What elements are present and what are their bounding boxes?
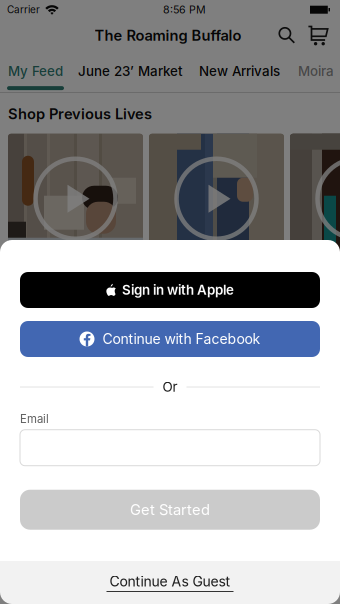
button[interactable]: New Arrivals xyxy=(199,63,280,79)
button[interactable]: Cart xyxy=(305,20,331,50)
staticText: Moira xyxy=(298,63,334,79)
staticText: Continue with Facebook xyxy=(102,330,260,347)
button[interactable]: My Feed xyxy=(7,63,64,90)
button[interactable]: Sign in with Apple xyxy=(20,272,320,308)
staticText: 8:56 PM xyxy=(163,3,206,16)
staticText: Email xyxy=(20,412,49,426)
staticText: Or xyxy=(162,379,177,395)
button[interactable]: June 23’ Market xyxy=(78,63,183,79)
staticText: Shop Previous Lives xyxy=(8,105,152,123)
button[interactable]: Continue with Facebook xyxy=(20,321,320,357)
staticText: Continue As Guest xyxy=(109,573,230,590)
staticText: Carrier xyxy=(7,3,40,16)
staticText: My Feed xyxy=(8,63,63,79)
staticText: New Arrivals xyxy=(199,63,280,79)
button[interactable]: Get Started xyxy=(20,490,320,530)
staticText: June 23’ Market xyxy=(78,63,183,79)
staticText: Sign in with Apple xyxy=(122,282,234,298)
staticText: Get Started xyxy=(130,501,210,518)
staticText: The Roaming Buffalo xyxy=(94,27,241,44)
button[interactable]: Moira xyxy=(298,63,334,79)
button[interactable]: Search xyxy=(274,20,300,50)
button[interactable]: Continue As Guest xyxy=(0,561,340,604)
